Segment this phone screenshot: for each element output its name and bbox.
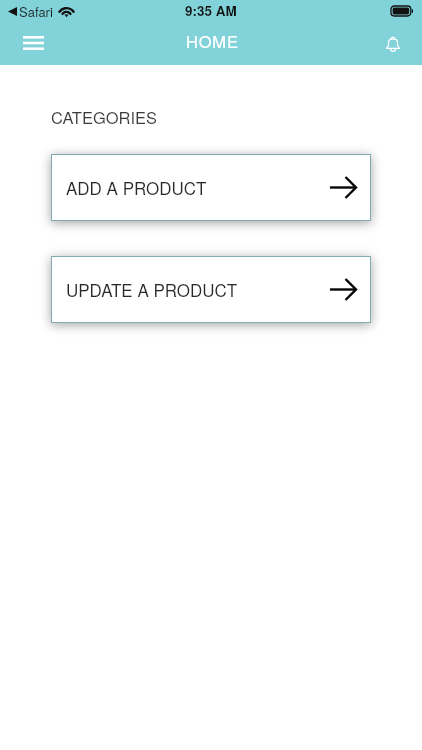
button[interactable]: Menu: [14, 24, 52, 62]
button[interactable]: ADD A PRODUCT: [51, 154, 371, 221]
button[interactable]: Notifications: [374, 24, 412, 62]
staticText: UPDATE A PRODUCT: [66, 277, 238, 301]
button[interactable]: UPDATE A PRODUCT: [51, 256, 371, 323]
staticText: 9:35 AM: [185, 1, 237, 20]
staticText: HOME: [186, 29, 239, 53]
staticText: CATEGORIES: [51, 105, 158, 129]
staticText: Safari: [19, 2, 53, 21]
staticText: ADD A PRODUCT: [66, 175, 207, 199]
